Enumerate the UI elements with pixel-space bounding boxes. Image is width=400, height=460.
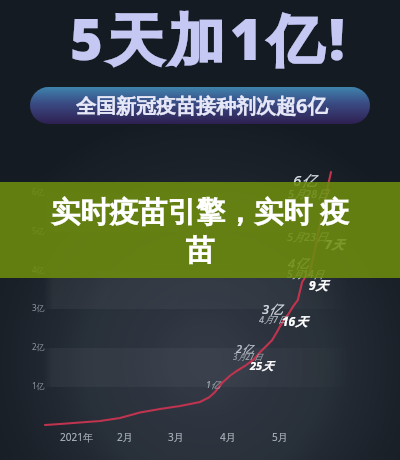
staticText: 7天 — [325, 236, 344, 252]
staticText: 3月27日 — [233, 351, 263, 362]
staticText: 4亿 — [32, 264, 45, 275]
staticText: 全国新冠疫苗接种剂次超6亿 — [76, 92, 328, 119]
staticText: 2021年 — [60, 430, 93, 444]
staticText: 4月7日 — [259, 313, 287, 325]
staticText: 3月 — [168, 430, 184, 444]
staticText: 6亿 — [32, 186, 45, 197]
button[interactable]: 全国新冠疫苗接种剂次超6亿 — [30, 87, 370, 124]
staticText: 5月14日 — [287, 267, 324, 281]
staticText: 25天 — [250, 358, 274, 373]
staticText: 5亿 — [32, 225, 45, 236]
staticText: 2亿 — [32, 341, 45, 352]
staticText: 3亿 — [262, 300, 283, 318]
staticText: 5月 — [272, 430, 288, 444]
staticText: 3亿 — [32, 302, 45, 313]
staticText: 1亿 — [32, 380, 45, 391]
staticText: 2亿 — [236, 341, 254, 356]
staticText: 6亿 — [293, 170, 317, 190]
staticText: 9天 — [309, 277, 328, 293]
staticText: 1亿 — [206, 378, 220, 390]
staticText: 4亿 — [288, 254, 309, 272]
staticText: 5月23日 — [287, 229, 328, 244]
staticText: 4月 — [220, 430, 236, 444]
staticText: 16天 — [282, 313, 308, 329]
staticText: 5月28日 — [288, 186, 329, 201]
staticText: 2月 — [117, 430, 133, 444]
staticText: 实时疫苗引擎，实时 疫苗 — [44, 191, 356, 269]
staticText: 5天加1亿! — [70, 0, 350, 76]
